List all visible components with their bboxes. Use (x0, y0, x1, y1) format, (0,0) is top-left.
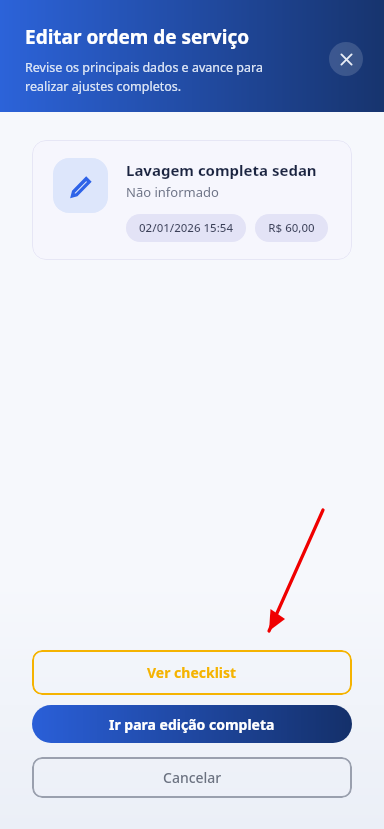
staticText: Lavagem completa sedan (126, 160, 317, 180)
button[interactable]: Ver checklist (32, 650, 352, 695)
staticText: Não informado (126, 183, 219, 201)
staticText: Revise os principais dados e avance para… (25, 59, 304, 95)
staticText: Ver checklist (147, 663, 237, 682)
staticText: Editar ordem de serviço (25, 24, 250, 50)
button[interactable]: R$ 60,00 (255, 214, 328, 242)
button[interactable]: 02/01/2026 15:54 (126, 214, 246, 242)
button[interactable]: Fechar (329, 42, 363, 76)
staticText: Cancelar (163, 768, 222, 787)
button[interactable]: Lavagem completa sedan (32, 140, 352, 260)
staticText: 02/01/2026 15:54 (139, 220, 233, 236)
staticText: Ir para edição completa (109, 715, 275, 734)
button[interactable]: Ir para edição completa (32, 705, 352, 743)
staticText: R$ 60,00 (268, 220, 315, 236)
button[interactable]: Cancelar (32, 757, 352, 798)
